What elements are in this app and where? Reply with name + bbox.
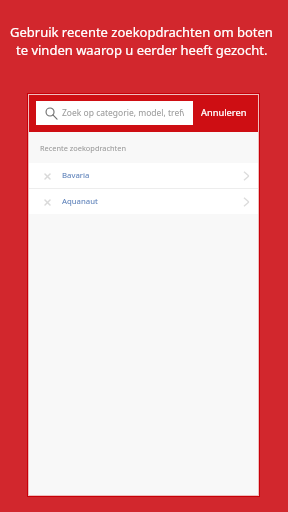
staticText: Bavaria [62, 170, 90, 181]
staticText: Aquanaut [62, 196, 98, 207]
other: Openen [239, 195, 253, 209]
other: Openen [239, 169, 253, 183]
button[interactable]: Annuleren [201, 95, 247, 132]
staticText: Gebruik recente zoekopdrachten om boten [10, 23, 273, 41]
button[interactable]: Zoek op categorie, model, trefwoorden [36, 101, 193, 125]
button[interactable]: Verwijderen [40, 169, 54, 183]
staticText: te vinden waarop u eerder heeft gezocht. [16, 41, 268, 59]
button[interactable]: Verwijderen [40, 195, 54, 209]
staticText: Recente zoekopdrachten [40, 143, 126, 153]
staticText: Zoek op categorie, model, trefwoorden [62, 107, 184, 119]
button[interactable]: Verwijderen [29, 189, 258, 214]
staticText: Annuleren [201, 106, 247, 119]
button[interactable]: Verwijderen [29, 163, 258, 188]
